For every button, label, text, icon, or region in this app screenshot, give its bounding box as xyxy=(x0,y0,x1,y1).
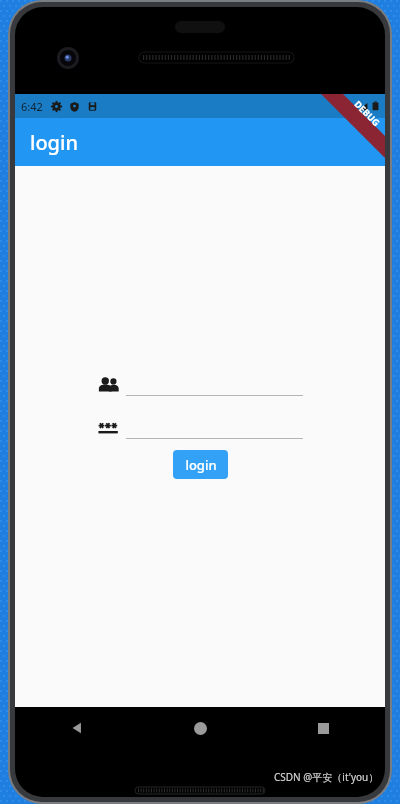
button[interactable]: login xyxy=(173,450,228,479)
staticText: login xyxy=(185,456,217,474)
staticText: CSDN @平安（it'you） xyxy=(274,770,379,784)
button[interactable]: Back xyxy=(15,707,139,749)
button[interactable]: Home xyxy=(139,707,262,749)
staticText: login xyxy=(30,129,78,156)
staticText: 6:42 xyxy=(21,99,43,114)
button[interactable] xyxy=(126,374,303,396)
button[interactable]: Recent apps xyxy=(262,707,385,749)
staticText: DEBUG xyxy=(352,98,383,128)
button[interactable] xyxy=(126,417,303,439)
staticText: LTE xyxy=(338,100,353,112)
